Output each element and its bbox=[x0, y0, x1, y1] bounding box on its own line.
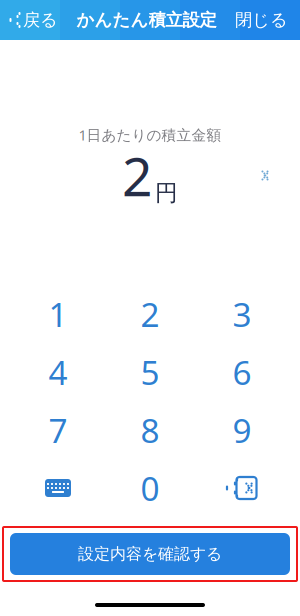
staticText: 1 bbox=[48, 292, 67, 336]
button[interactable]: 3 bbox=[196, 285, 288, 343]
button[interactable]: 設定内容を確認する bbox=[10, 533, 290, 575]
button[interactable]: 0 bbox=[104, 459, 196, 517]
staticText: 円 bbox=[155, 179, 178, 207]
staticText: 設定内容を確認する bbox=[78, 544, 222, 564]
staticText: 4 bbox=[48, 350, 67, 394]
staticText: かんたん積立設定 bbox=[76, 9, 216, 31]
staticText: 0 bbox=[140, 466, 159, 510]
staticText: 閉じる bbox=[235, 9, 288, 31]
button[interactable]: 7 bbox=[12, 401, 104, 459]
button[interactable]: 削除 bbox=[196, 459, 288, 517]
staticText: 1日あたりの積立金額 bbox=[78, 125, 221, 144]
button[interactable]: 9 bbox=[196, 401, 288, 459]
staticText: 8 bbox=[140, 408, 159, 452]
button[interactable]: キーボードを閉じる bbox=[12, 459, 104, 517]
staticText: 戻る bbox=[23, 9, 58, 31]
button[interactable]: 8 bbox=[104, 401, 196, 459]
staticText: 6 bbox=[232, 350, 251, 394]
button[interactable]: 金額をクリア bbox=[248, 158, 282, 192]
staticText: 5 bbox=[140, 350, 159, 394]
button[interactable]: 4 bbox=[12, 343, 104, 401]
button[interactable]: 閉じる bbox=[227, 0, 300, 40]
staticText: 2 bbox=[122, 140, 153, 211]
button[interactable]: 2 bbox=[104, 285, 196, 343]
button[interactable]: 6 bbox=[196, 343, 288, 401]
staticText: 9 bbox=[232, 408, 251, 452]
staticText: 2 bbox=[140, 292, 159, 336]
staticText: 3 bbox=[232, 292, 251, 336]
staticText: 7 bbox=[48, 408, 67, 452]
button[interactable]: 1 bbox=[12, 285, 104, 343]
button[interactable]: 5 bbox=[104, 343, 196, 401]
button[interactable]: 戻る bbox=[0, 0, 66, 40]
